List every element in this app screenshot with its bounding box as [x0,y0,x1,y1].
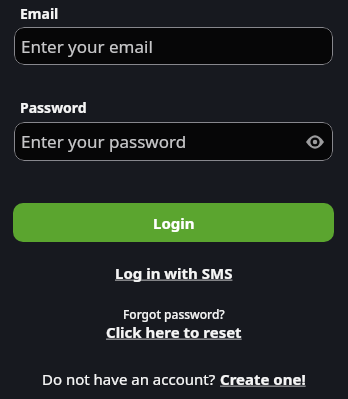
button[interactable]: Click here to reset [106,322,242,342]
staticText: Email [20,4,59,23]
staticText: Enter your password [21,130,187,153]
staticText: Password [20,98,87,117]
button[interactable]: Enter your email [14,27,333,65]
staticText: Enter your email [21,35,153,58]
button[interactable]: Enter your password [14,122,333,161]
staticText: Do not have an account? [42,369,220,389]
button[interactable]: Login [13,203,334,242]
staticText: Forgot password? [123,306,225,322]
button[interactable]: Create one! [220,369,306,389]
staticText: Login [153,213,195,233]
button[interactable]: Log in with SMS [115,263,233,283]
